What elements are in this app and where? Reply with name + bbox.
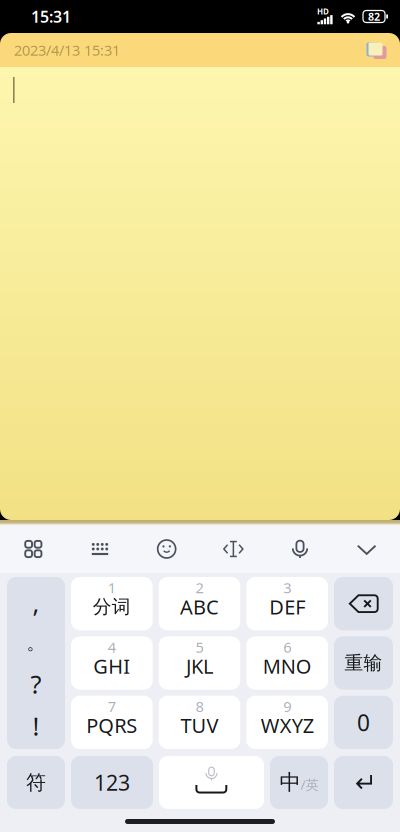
button[interactable]: Backspace: [334, 577, 393, 630]
button[interactable]: 123: [71, 756, 153, 809]
staticText: !: [32, 709, 39, 743]
staticText: 0: [357, 707, 370, 737]
button[interactable]: Return: [334, 756, 393, 809]
button[interactable]: Panels: [0, 525, 67, 573]
staticText: ABC: [180, 593, 219, 620]
staticText: 重输: [344, 651, 382, 674]
staticText: DEF: [269, 593, 305, 620]
button[interactable]: Chinese English toggle: [270, 756, 328, 809]
button[interactable]: 5: [159, 636, 240, 690]
button[interactable]: 6: [246, 636, 328, 690]
button[interactable]: Move cursor: [200, 525, 267, 573]
button[interactable]: 8: [159, 696, 240, 749]
staticText: JKL: [186, 653, 213, 679]
button[interactable]: 1: [71, 577, 153, 630]
staticText: 1: [108, 578, 116, 597]
button[interactable]: Notes list: [366, 40, 388, 60]
staticText: 4: [108, 637, 116, 657]
staticText: 15:31: [31, 6, 71, 27]
button[interactable]: 7: [71, 696, 153, 749]
button[interactable]: 9: [246, 696, 328, 749]
button[interactable]: 重输: [334, 636, 393, 690]
button[interactable]: Keyboard layout: [67, 525, 133, 573]
staticText: 中: [279, 769, 300, 796]
staticText: /英: [300, 776, 318, 793]
staticText: 82: [368, 9, 380, 24]
staticText: 2: [195, 578, 203, 597]
staticText: 符: [26, 770, 46, 795]
button[interactable]: Voice input: [267, 525, 333, 573]
button[interactable]: 2: [159, 577, 240, 630]
staticText: 9: [283, 697, 291, 716]
button[interactable]: 符: [7, 756, 65, 809]
staticText: 3: [283, 578, 291, 597]
button[interactable]: 0: [334, 696, 393, 749]
staticText: ?: [30, 667, 41, 701]
staticText: 分词: [93, 595, 131, 618]
staticText: MNO: [263, 653, 312, 679]
staticText: 123: [94, 768, 130, 797]
button[interactable]: Punctuation: [7, 577, 65, 749]
staticText: TUV: [180, 712, 218, 739]
button[interactable]: 4: [71, 636, 153, 690]
staticText: 8: [195, 697, 203, 716]
staticText: 2023/4/13 15:31: [14, 40, 120, 60]
staticText: 7: [108, 697, 116, 716]
button[interactable]: Emoji: [133, 525, 200, 573]
staticText: 6: [283, 637, 291, 657]
staticText: PQRS: [86, 712, 137, 739]
button[interactable]: 3: [246, 577, 328, 630]
staticText: 。: [26, 631, 45, 654]
staticText: WXYZ: [261, 712, 314, 739]
staticText: HD: [317, 6, 329, 17]
staticText: ,: [32, 586, 39, 620]
staticText: GHI: [93, 653, 130, 679]
staticText: 5: [195, 637, 203, 657]
button[interactable]: Hide keyboard: [333, 525, 400, 573]
button[interactable]: Space: [159, 756, 264, 809]
